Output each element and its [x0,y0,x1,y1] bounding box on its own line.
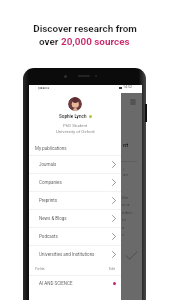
staticText: Sophie Lynch [59,114,87,119]
staticText: 20,000 sources [61,36,130,48]
staticText: an [123,172,128,177]
staticText: | [123,167,125,172]
staticText: Companies [39,180,62,185]
staticText: to [122,217,126,222]
staticText: or a [122,202,130,207]
staticText: AI AND SCIENCE [39,281,73,286]
staticText: Universities and Institutions [39,252,95,257]
staticText: News & Blogs [39,216,67,221]
staticText: over [39,36,61,48]
staticText: My publications [35,146,67,151]
staticText: e [122,225,125,230]
staticText: Podcasts [39,234,58,239]
staticText: Preprints [39,198,58,203]
staticText: the [122,195,129,200]
staticText: Journals [39,162,57,167]
button[interactable]: Universities and Institutions [29,246,121,263]
staticText: University of Oxford [56,129,95,134]
staticText: 14:52 [123,85,132,89]
button[interactable]: News & Blogs [29,210,121,227]
button[interactable]: Edit [109,267,116,271]
button[interactable]: AI AND SCIENCE [29,276,121,290]
staticText: nt [123,142,129,149]
staticText: mber [122,210,133,215]
staticText: PhD Student [63,123,88,128]
button[interactable]: Open navigation menu [130,99,136,105]
staticText: Fields [35,267,45,271]
staticText: s [122,232,125,237]
button[interactable]: Podcasts [29,228,121,245]
staticText: Discover research from [33,23,137,35]
button[interactable]: Journals [29,156,121,173]
button[interactable]: Preprints [29,192,121,209]
button[interactable]: Companies [29,174,121,191]
